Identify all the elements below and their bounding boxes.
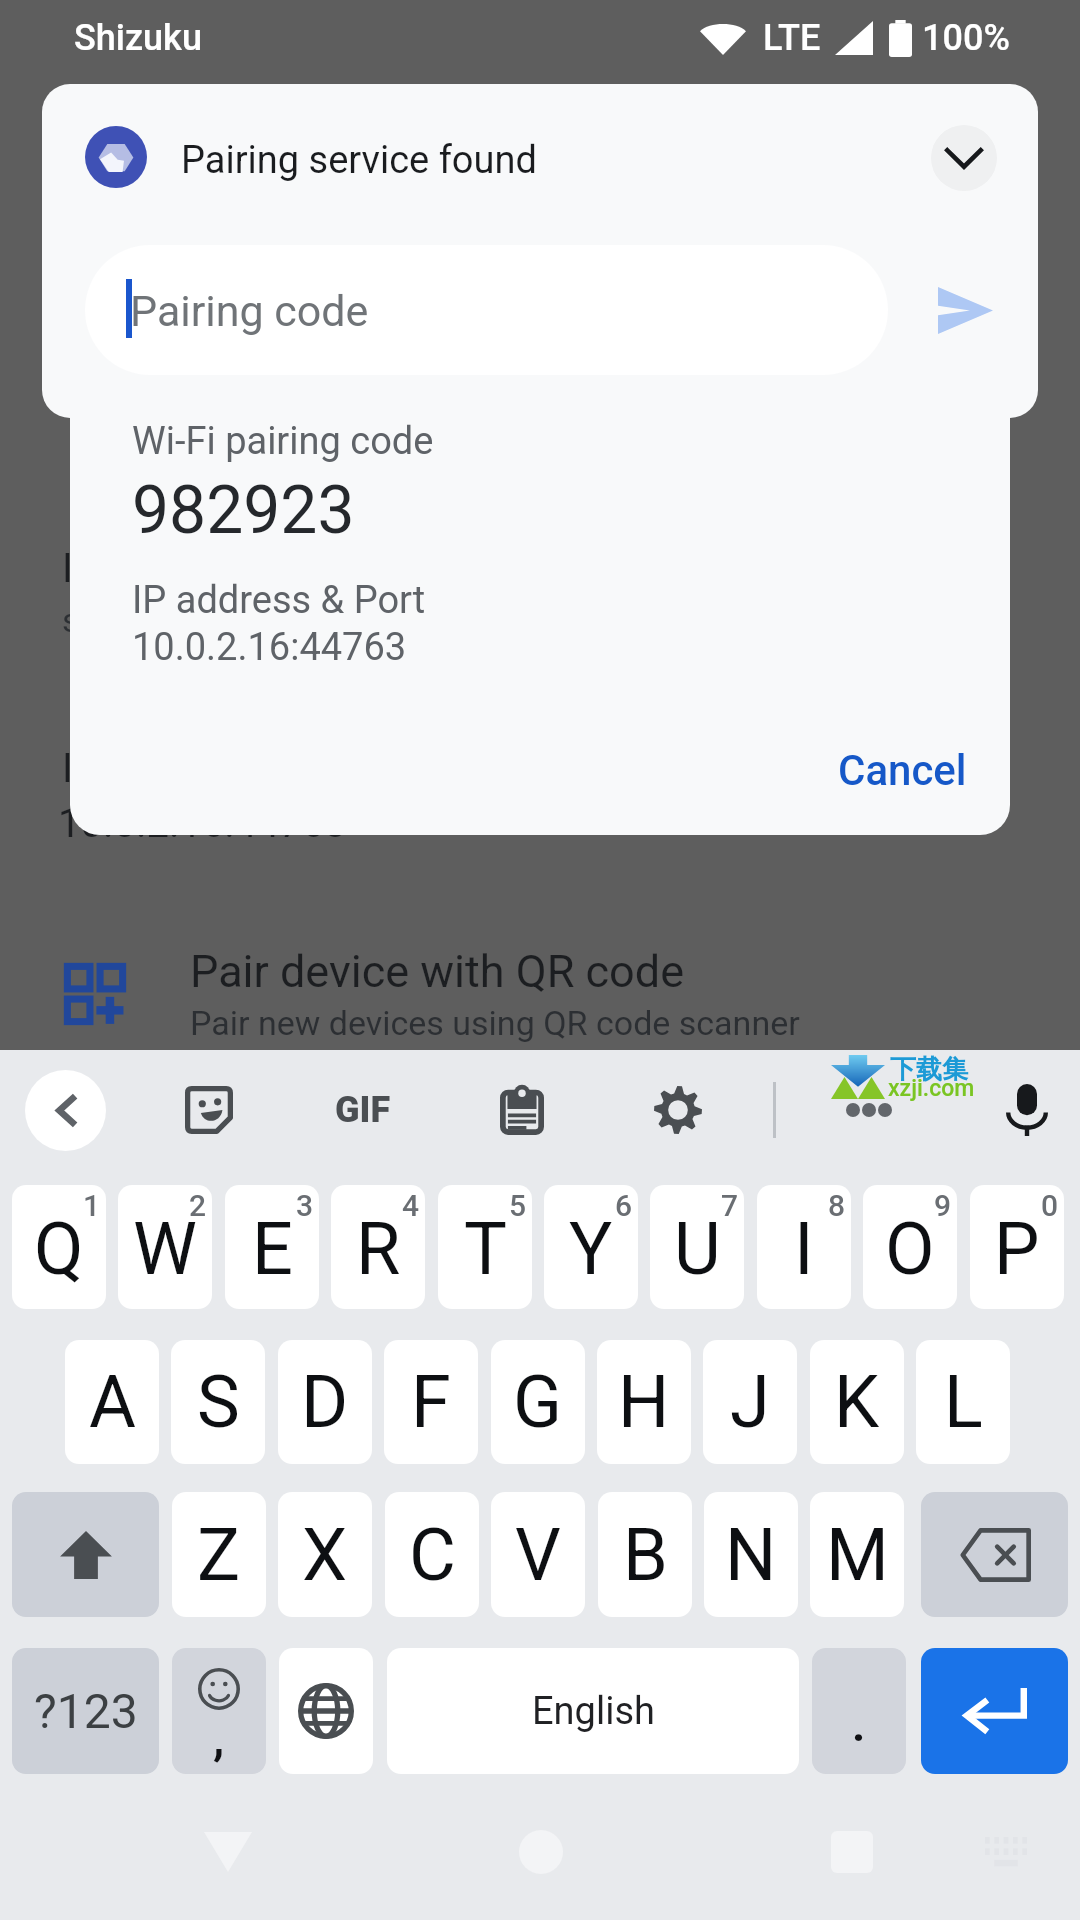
staticText: Wi-Fi pairing code: [132, 419, 434, 464]
button[interactable]: K: [810, 1340, 904, 1464]
staticText: E: [252, 1207, 293, 1291]
staticText: Pair device with QR code: [190, 945, 684, 998]
staticText: M: [826, 1513, 889, 1597]
button[interactable]: Backspace: [921, 1492, 1068, 1617]
staticText: I: [794, 1207, 814, 1291]
button[interactable]: Change language: [279, 1648, 373, 1774]
staticText: A: [89, 1360, 136, 1444]
button[interactable]: T: [438, 1185, 532, 1309]
button[interactable]: Cancel: [808, 730, 997, 811]
staticText: 10.0.2.16:44763: [58, 800, 347, 847]
button[interactable]: ?123: [12, 1648, 159, 1774]
staticText: 8: [828, 1188, 846, 1223]
button[interactable]: X: [278, 1492, 372, 1617]
button[interactable]: V: [491, 1492, 585, 1617]
staticText: P: [994, 1207, 1040, 1291]
staticText: 982923: [132, 472, 355, 549]
staticText: English: [532, 1689, 655, 1734]
staticText: ,: [213, 1712, 225, 1766]
staticText: C: [409, 1513, 456, 1597]
button[interactable]: Enter: [921, 1648, 1068, 1774]
button[interactable]: GIF: [313, 1060, 413, 1160]
staticText: xzji.com: [888, 1075, 975, 1102]
button[interactable]: Stickers: [159, 1060, 259, 1160]
staticText: U: [674, 1207, 721, 1291]
staticText: 10.0.2.16:44763: [132, 625, 407, 670]
button[interactable]: Expand notification: [931, 125, 997, 191]
button[interactable]: U: [650, 1185, 744, 1309]
staticText: LTE: [763, 17, 821, 59]
staticText: I: [62, 545, 73, 592]
button[interactable]: Send pairing code: [910, 246, 1020, 374]
button[interactable]: E: [225, 1185, 319, 1309]
button[interactable]: G: [491, 1340, 585, 1464]
staticText: Pair new devices using QR code scanner: [190, 1003, 800, 1043]
staticText: R: [356, 1207, 401, 1291]
button[interactable]: Q: [12, 1185, 106, 1309]
button[interactable]: B: [598, 1492, 692, 1617]
button[interactable]: I: [757, 1185, 851, 1309]
button[interactable]: Pairing code: [85, 245, 888, 375]
staticText: IP address & Port: [132, 578, 426, 623]
staticText: T: [464, 1207, 507, 1291]
button[interactable]: More options: [819, 1060, 919, 1160]
button[interactable]: Clipboard: [472, 1060, 572, 1160]
staticText: L: [944, 1360, 983, 1444]
button[interactable]: Settings: [628, 1060, 728, 1160]
button[interactable]: C: [385, 1492, 479, 1617]
staticText: 9: [934, 1188, 952, 1223]
button[interactable]: Z: [172, 1492, 266, 1617]
staticText: F: [411, 1360, 451, 1444]
button[interactable]: D: [278, 1340, 372, 1464]
staticText: 4: [402, 1188, 420, 1223]
staticText: Cancel: [838, 746, 967, 795]
staticText: S: [197, 1360, 240, 1444]
staticText: 3: [296, 1188, 314, 1223]
staticText: Shizuku: [74, 17, 202, 59]
staticText: 100%: [922, 17, 1010, 59]
button[interactable]: O: [863, 1185, 957, 1309]
button[interactable]: Voice input: [977, 1060, 1077, 1160]
staticText: Pairing service found: [181, 138, 537, 183]
button[interactable]: L: [916, 1340, 1010, 1464]
staticText: W: [133, 1207, 197, 1291]
staticText: I: [62, 745, 73, 792]
staticText: D: [301, 1360, 349, 1444]
staticText: X: [302, 1513, 348, 1597]
staticText: V: [515, 1513, 561, 1597]
button[interactable]: J: [703, 1340, 797, 1464]
staticText: O: [885, 1207, 935, 1291]
staticText: 5: [509, 1188, 527, 1223]
button[interactable]: F: [384, 1340, 478, 1464]
button[interactable]: P: [970, 1185, 1064, 1309]
staticText: 下载集: [890, 1053, 968, 1086]
staticText: Y: [569, 1207, 613, 1291]
staticText: J: [730, 1360, 770, 1444]
button[interactable]: M: [810, 1492, 904, 1617]
button[interactable]: N: [704, 1492, 798, 1617]
staticText: Pairing code: [130, 286, 369, 336]
button[interactable]: Period: [812, 1648, 906, 1774]
button[interactable]: English: [387, 1648, 799, 1774]
staticText: 7: [721, 1188, 739, 1223]
staticText: 0: [1041, 1188, 1059, 1223]
button[interactable]: Back: [25, 1070, 106, 1151]
button[interactable]: R: [331, 1185, 425, 1309]
button[interactable]: A: [65, 1340, 159, 1464]
button[interactable]: S: [171, 1340, 265, 1464]
button[interactable]: Emoji: [172, 1648, 266, 1774]
button[interactable]: Recents: [807, 1807, 897, 1897]
staticText: ?123: [34, 1683, 138, 1739]
button[interactable]: Y: [544, 1185, 638, 1309]
staticText: s: [62, 600, 80, 640]
staticText: G: [513, 1360, 563, 1444]
button[interactable]: Home: [496, 1807, 586, 1897]
button[interactable]: Back: [183, 1807, 273, 1897]
staticText: 2: [189, 1188, 207, 1223]
button[interactable]: W: [118, 1185, 212, 1309]
staticText: Z: [197, 1513, 241, 1597]
staticText: K: [834, 1360, 880, 1444]
button[interactable]: H: [597, 1340, 691, 1464]
button[interactable]: Shift: [12, 1492, 159, 1617]
